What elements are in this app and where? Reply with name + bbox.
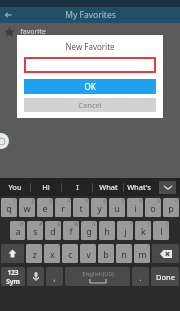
button[interactable]: ?	[134, 244, 150, 263]
button[interactable]: !	[26, 244, 42, 263]
button[interactable]: @	[10, 221, 25, 240]
staticText: &	[92, 221, 96, 227]
button[interactable]: Comma	[46, 267, 63, 286]
button[interactable]: 5	[73, 198, 89, 217]
staticText: z	[32, 248, 37, 260]
button[interactable]: Shift	[1, 244, 24, 263]
staticText: u	[114, 202, 120, 214]
button[interactable]: Done	[151, 267, 179, 286]
staticText: 1	[13, 198, 16, 204]
button[interactable]: Period	[132, 267, 149, 286]
button[interactable]: $	[45, 221, 61, 240]
staticText: 6	[103, 198, 106, 204]
staticText: 4	[67, 198, 70, 204]
staticText: New Favorite	[24, 41, 156, 52]
staticText: OK	[84, 81, 96, 92]
staticText: You	[8, 182, 22, 192]
staticText: (	[148, 221, 150, 227]
button[interactable]: What's	[124, 178, 154, 196]
button[interactable]: Backspace	[152, 244, 179, 263]
staticText: r	[61, 202, 65, 214]
button[interactable]: 9	[145, 198, 161, 217]
staticText: My Favorites	[65, 9, 116, 21]
button[interactable]: Space	[65, 267, 130, 286]
button[interactable]: Assistive bubble	[0, 133, 9, 149]
staticText: $	[57, 221, 60, 227]
button[interactable]: -	[99, 221, 115, 240]
button[interactable]: (	[135, 221, 151, 240]
staticText: !	[39, 244, 41, 250]
button[interactable]: '	[62, 244, 78, 263]
staticText: x	[50, 248, 55, 260]
staticText: ;	[111, 244, 113, 250]
staticText: 2	[31, 198, 34, 204]
button[interactable]: Cancel	[24, 98, 156, 112]
button[interactable]: Expand suggestions	[154, 178, 180, 196]
staticText: 0	[175, 198, 178, 204]
button[interactable]: 8	[127, 198, 143, 217]
staticText: /	[129, 244, 131, 250]
button[interactable]: 2	[19, 198, 35, 217]
button[interactable]: /	[116, 244, 132, 263]
button[interactable]: ;	[98, 244, 114, 263]
staticText: t	[79, 202, 83, 214]
staticText: Done	[156, 272, 175, 282]
button[interactable]: +	[117, 221, 133, 240]
staticText: e	[42, 202, 48, 214]
button[interactable]: )	[153, 221, 169, 240]
staticText: p	[168, 202, 174, 214]
button[interactable]: Hi	[31, 178, 61, 196]
staticText: Sym	[6, 277, 20, 286]
staticText: Cancel	[78, 100, 102, 110]
staticText: m	[138, 248, 147, 260]
staticText: What	[99, 182, 118, 192]
staticText: q	[6, 202, 12, 214]
staticText: English(US)	[82, 270, 114, 278]
staticText: favorite	[20, 27, 46, 37]
button[interactable]: Back	[0, 7, 16, 23]
button[interactable]: "	[44, 244, 60, 263]
staticText: 5	[85, 198, 88, 204]
staticText: %	[74, 221, 78, 227]
button[interactable]: 0	[163, 198, 179, 217]
button[interactable]: Voice input	[27, 267, 44, 286]
button[interactable]: #	[27, 221, 43, 240]
button[interactable]: You	[0, 178, 30, 196]
staticText: i	[134, 202, 137, 214]
button[interactable]: What	[93, 178, 123, 196]
button[interactable]	[24, 57, 156, 73]
staticText: 123	[7, 268, 19, 277]
button[interactable]: 7	[109, 198, 125, 217]
staticText: g	[86, 225, 92, 237]
staticText: k	[141, 225, 146, 237]
button[interactable]: OK	[24, 79, 156, 94]
staticText: )	[166, 221, 168, 227]
staticText: n	[121, 248, 127, 260]
staticText: b	[103, 248, 109, 260]
staticText: w	[23, 202, 31, 214]
staticText: 3	[49, 198, 52, 204]
staticText: +	[129, 221, 132, 227]
staticText: -	[112, 221, 114, 227]
button[interactable]: %	[63, 221, 79, 240]
button[interactable]: Symbols	[1, 267, 25, 286]
staticText: a	[15, 225, 21, 237]
button[interactable]: :	[80, 244, 96, 263]
staticText: ,	[53, 271, 56, 283]
button[interactable]: &	[81, 221, 97, 240]
button[interactable]: 1	[1, 198, 17, 217]
staticText: 9	[157, 198, 160, 204]
staticText: '	[75, 244, 77, 250]
button[interactable]: I	[62, 178, 92, 196]
staticText: I	[76, 182, 79, 192]
button[interactable]: favorite	[0, 23, 180, 41]
staticText: 7	[121, 198, 124, 204]
button[interactable]: 3	[37, 198, 53, 217]
staticText: c	[68, 248, 73, 260]
staticText: d	[50, 225, 56, 237]
staticText: j	[124, 225, 127, 237]
button[interactable]: 4	[55, 198, 71, 217]
button[interactable]: 6	[91, 198, 107, 217]
staticText: 8	[139, 198, 142, 204]
staticText: y	[97, 202, 102, 214]
